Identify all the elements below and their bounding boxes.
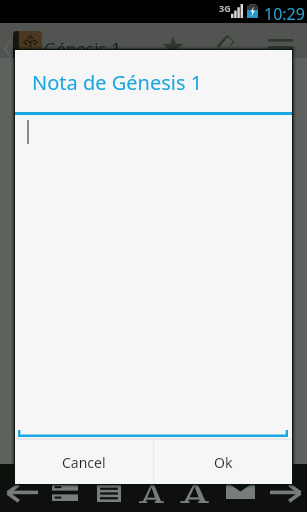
staticText: Génesis 1	[44, 37, 121, 60]
button[interactable]: Decrease text size	[132, 464, 172, 512]
button[interactable]: Previous chapter	[0, 464, 44, 512]
button[interactable]: Split view	[44, 464, 88, 512]
staticText: 3G	[219, 2, 231, 14]
button[interactable]: Edit	[204, 23, 247, 58]
button[interactable]: Favorite	[152, 23, 195, 58]
staticText: Nota de Génesis 1	[32, 69, 203, 96]
button[interactable]: Chapters	[88, 464, 132, 512]
button[interactable]: Ok	[154, 440, 292, 484]
staticText: Ok	[214, 453, 233, 472]
button[interactable]: Share by mail	[218, 464, 264, 512]
staticText: Cancel	[62, 453, 106, 472]
staticText: 10:29	[264, 3, 305, 25]
button[interactable]: Cancel	[15, 440, 153, 484]
button[interactable]: Back	[0, 23, 13, 58]
button[interactable]: Next chapter	[264, 464, 307, 512]
button[interactable]: Menu	[258, 23, 302, 58]
button[interactable]: Increase text size	[174, 464, 218, 512]
